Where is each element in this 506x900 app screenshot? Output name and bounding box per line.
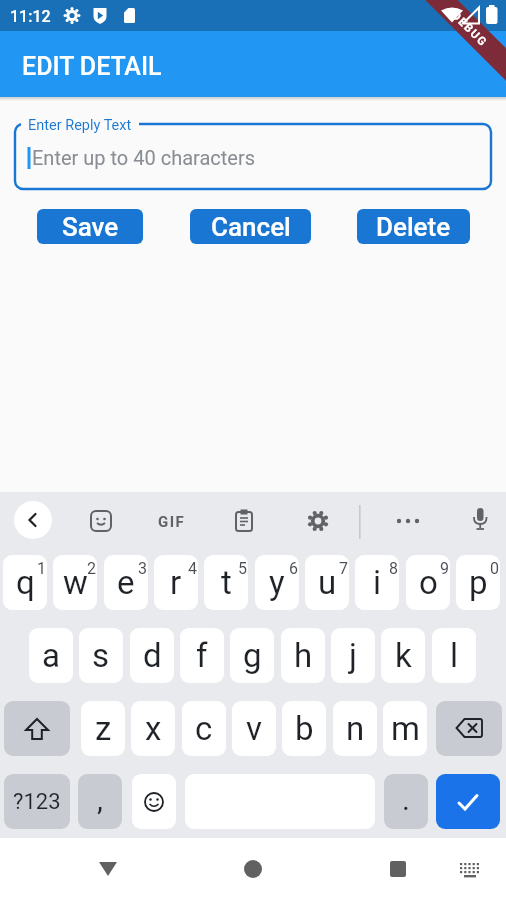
button[interactable]: v [232,701,276,756]
button[interactable] [231,508,257,534]
button[interactable]: o [406,555,450,610]
staticText: 0 [490,559,499,578]
staticText: DEBUG [450,8,491,49]
staticText: c [195,709,213,748]
button[interactable] [4,701,70,756]
button[interactable] [241,857,265,881]
staticText: r [170,563,182,602]
button[interactable]: Save [37,209,143,244]
staticText: p [469,563,488,602]
staticText: 1 [37,559,46,578]
staticText: z [95,709,112,748]
staticText: g [243,636,262,675]
staticText: GIF [158,513,186,531]
button[interactable]: a [29,628,73,683]
button[interactable]: ?123 [4,774,70,829]
button[interactable]: r [154,555,198,610]
staticText: h [294,636,313,675]
button[interactable]: u [305,555,349,610]
button[interactable]: w [53,555,97,610]
staticText: n [346,709,365,748]
staticText: 3 [138,559,147,578]
button[interactable]: . [384,774,428,829]
staticText: 7 [339,559,348,578]
button[interactable] [96,857,120,881]
staticText: k [395,636,412,675]
staticText: 6 [289,559,298,578]
staticText: b [295,709,314,748]
staticText: 2 [87,559,96,578]
staticText: Enter Reply Text [28,117,132,134]
button[interactable]: GIF [152,504,192,540]
staticText: Save [62,212,119,242]
button[interactable] [386,857,410,881]
staticText: ?123 [13,789,61,815]
button[interactable]: b [282,701,326,756]
staticText: e [117,563,135,602]
button[interactable]: q [3,555,47,610]
button[interactable]: e [104,555,148,610]
staticText: s [92,636,110,675]
staticText: , [97,782,103,817]
staticText: t [221,563,232,602]
button[interactable]: h [281,628,325,683]
button[interactable]: s [79,628,123,683]
staticText: d [143,636,162,675]
staticText: l [450,636,459,675]
button[interactable]: Enter Reply Text [14,118,492,191]
staticText: y [269,563,285,602]
button[interactable]: n [333,701,377,756]
button[interactable] [436,701,502,756]
staticText: a [42,636,60,675]
staticText: u [318,563,337,602]
button[interactable]: Cancel [190,209,311,244]
staticText: v [246,709,262,748]
staticText: i [373,563,382,602]
staticText: Cancel [211,212,291,242]
button[interactable]: j [331,628,375,683]
button[interactable] [132,774,176,829]
staticText: 5 [238,559,247,578]
button[interactable]: , [78,774,122,829]
button[interactable]: i [355,555,399,610]
button[interactable]: y [255,555,299,610]
staticText: 4 [188,559,197,578]
staticText: q [16,563,35,602]
staticText: Delete [376,212,451,242]
button[interactable]: m [383,701,427,756]
button[interactable] [458,859,482,883]
staticText: o [419,563,438,602]
staticText: 11:12 [10,7,51,26]
staticText: EDIT DETAIL [22,52,162,81]
button[interactable] [467,506,493,532]
button[interactable]: f [180,628,224,683]
staticText: 8 [389,559,398,578]
staticText: Enter up to 40 characters [32,146,256,169]
button[interactable]: t [204,555,248,610]
button[interactable] [305,508,331,534]
button[interactable] [14,501,52,539]
button[interactable]: k [381,628,425,683]
staticText: j [349,636,357,675]
staticText: w [63,563,88,602]
button[interactable]: c [182,701,226,756]
button[interactable]: Delete [357,209,470,244]
button[interactable] [88,508,114,534]
button[interactable]: l [432,628,476,683]
staticText: x [145,709,162,748]
button[interactable] [436,774,500,829]
button[interactable]: d [130,628,174,683]
staticText: 9 [440,559,449,578]
staticText: . [402,782,410,817]
button[interactable] [394,508,422,536]
button[interactable]: p [456,555,500,610]
button[interactable]: z [81,701,125,756]
button[interactable]: g [230,628,274,683]
staticText: f [196,636,208,675]
staticText: m [391,709,420,748]
button[interactable]: x [131,701,175,756]
